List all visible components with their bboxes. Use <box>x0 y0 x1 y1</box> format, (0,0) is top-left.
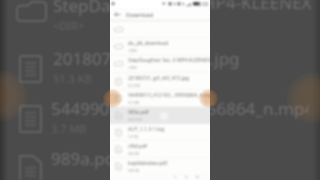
staticText: <DIR> <box>128 48 138 53</box>
staticText: 326 KB <box>128 168 140 173</box>
staticText: 1.0 KB <box>128 134 138 139</box>
staticText: 51.3 KB <box>53 71 92 86</box>
button[interactable]: kapldsktskev.pdf <box>110 158 210 175</box>
staticText: 5449901 <box>51 97 120 120</box>
staticText: 364 KB <box>128 151 140 156</box>
staticText: 364.5 KB <box>128 117 142 122</box>
staticText: 3.7 MB <box>128 100 139 105</box>
staticText: 54499013_412193...39556864_n.mp4 <box>128 92 210 99</box>
staticText: kapldsktskev.pdf <box>128 160 168 167</box>
button[interactable]: Back <box>110 8 124 21</box>
button[interactable]: AUT_1.1.3-1.log <box>110 124 210 141</box>
staticText: 20180721_gif_s93_472.jpg <box>128 75 190 82</box>
staticText: <DIR> <box>128 65 138 70</box>
button[interactable]: 20180721_gif_s93_472.jpg <box>110 73 210 90</box>
staticText: 989a.pdf <box>128 109 149 116</box>
staticText: AUT_1.1.3-1.log <box>128 126 165 133</box>
staticText: cfldl.pdf <box>128 143 147 150</box>
staticText: 2018072 <box>53 47 122 70</box>
staticText: 10:33 <box>196 1 209 8</box>
staticText: 556864_n.mp4 <box>197 97 309 120</box>
button[interactable] <box>110 176 210 180</box>
staticText: <DIR> <box>53 18 85 33</box>
staticText: MP4-KLEENEX <box>200 0 312 14</box>
button[interactable]: 54499013_412193...39556864_n.mp4 <box>110 90 210 107</box>
button[interactable]: du_jdt_download <box>110 38 210 55</box>
staticText: 51.3 KB <box>128 83 140 88</box>
button[interactable]: cfldl.pdf <box>110 141 210 158</box>
staticText: 2.jpg <box>200 47 240 70</box>
staticText: 989a.pdf <box>51 147 122 170</box>
button[interactable]: 989a.pdf <box>110 107 210 124</box>
button[interactable]: StepDaughter Sec..X MP4-KLEENEX <box>110 55 210 72</box>
staticText: Download <box>126 11 154 19</box>
staticText: 3.7 MB <box>51 121 87 136</box>
staticText: StepDau <box>53 0 121 17</box>
staticText: StepDaughter Sec..X MP4-KLEENEX <box>128 57 210 64</box>
staticText: du_jdt_download <box>128 40 168 47</box>
